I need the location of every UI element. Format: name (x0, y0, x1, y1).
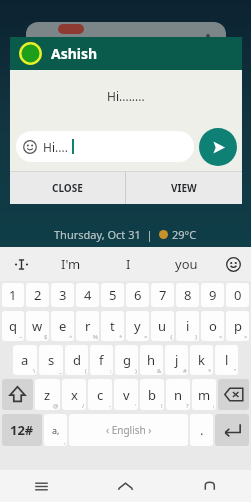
staticText: Thursday, Oct 31 | (54, 227, 153, 242)
staticText: x (71, 386, 78, 404)
button[interactable]: Back (167, 470, 251, 502)
staticText: = (144, 333, 148, 341)
button[interactable]: y (126, 311, 149, 341)
staticText: 3 (59, 286, 67, 304)
button[interactable]: 4 (76, 283, 99, 307)
button[interactable]: 7 (151, 283, 174, 307)
staticText: s (48, 351, 55, 369)
staticText: $ (44, 333, 48, 341)
button[interactable]: i (176, 311, 199, 341)
button[interactable]: d (65, 345, 88, 375)
staticText: l (225, 351, 229, 369)
button[interactable]: 9 (201, 283, 224, 307)
button[interactable]: 5 (101, 283, 124, 307)
button[interactable]: t (101, 311, 124, 341)
staticText: h (147, 351, 156, 369)
staticText: - (109, 402, 111, 410)
staticText: : (110, 367, 112, 375)
button[interactable]: p (226, 311, 249, 341)
button[interactable]: 0 (226, 283, 249, 307)
button[interactable]: Emoji (215, 247, 251, 281)
button[interactable]: w (26, 311, 49, 341)
staticText: ‹ English › (106, 423, 152, 437)
staticText: Hi.... (43, 139, 68, 155)
button[interactable]: Backspace (218, 379, 249, 410)
button[interactable]: s (39, 345, 63, 375)
button[interactable]: Home (83, 470, 167, 502)
staticText: c (97, 386, 104, 404)
button[interactable]: 3 (51, 283, 74, 307)
staticText: \ (33, 367, 36, 375)
button[interactable]: r (76, 311, 99, 341)
staticText: o (209, 317, 217, 335)
button[interactable]: a, (44, 414, 67, 446)
button[interactable]: VIEW (126, 172, 242, 204)
button[interactable]: 2 (26, 283, 49, 307)
button[interactable]: o (201, 311, 224, 341)
button[interactable]: Ashish (10, 37, 242, 70)
staticText: you (175, 255, 198, 273)
staticText: , (64, 438, 66, 446)
button[interactable]: j (165, 345, 188, 375)
button[interactable]: b (140, 379, 164, 410)
button[interactable]: 6 (126, 283, 149, 307)
staticText: q (9, 317, 17, 335)
staticText: VIEW (171, 181, 197, 195)
button[interactable]: Recents (0, 470, 83, 502)
button[interactable]: h (140, 345, 163, 375)
button[interactable]: Hi.... (16, 131, 194, 162)
staticText: e (59, 317, 67, 335)
staticText: a, (52, 424, 60, 436)
staticText: y (134, 317, 141, 335)
staticText: 1 (9, 286, 17, 304)
staticText: ! (161, 402, 163, 410)
button[interactable]: m (192, 379, 216, 410)
button[interactable]: Shift (2, 379, 33, 410)
staticText: m (198, 386, 211, 404)
staticText: ) (135, 367, 137, 375)
button[interactable]: 12# (2, 414, 42, 446)
button[interactable]: x (62, 379, 86, 410)
staticText: 0 (234, 286, 242, 304)
button[interactable]: . (190, 414, 213, 446)
button[interactable]: CLOSE (10, 172, 125, 204)
button[interactable]: you (157, 247, 215, 281)
staticText: * (119, 333, 123, 341)
staticText: & (157, 367, 162, 375)
button[interactable]: I'm (42, 247, 99, 281)
button[interactable]: c (88, 379, 112, 410)
staticText: 2 (34, 286, 42, 304)
staticText: 5 (109, 286, 117, 304)
staticText: Hi........ (107, 88, 145, 104)
staticText: 12# (10, 421, 34, 439)
button[interactable]: Enter (215, 414, 249, 446)
staticText: a (21, 351, 29, 369)
staticText: r (85, 317, 91, 335)
staticText: z (44, 386, 51, 404)
staticText: ~ (19, 333, 23, 341)
button[interactable]: ‹ English › (69, 414, 188, 446)
staticText: w (32, 317, 43, 335)
staticText: k (198, 351, 205, 369)
button[interactable]: e (51, 311, 74, 341)
button[interactable]: z (35, 379, 60, 410)
button[interactable]: f (90, 345, 113, 375)
button[interactable]: n (166, 379, 190, 410)
button[interactable]: v (114, 379, 138, 410)
staticText: CLOSE (52, 181, 83, 195)
staticText: b (148, 386, 156, 404)
button[interactable]: 8 (176, 283, 199, 307)
staticText: 9 (209, 286, 217, 304)
button[interactable]: 1 (2, 283, 24, 307)
button[interactable]: g (115, 345, 138, 375)
button[interactable]: a (13, 345, 37, 375)
button[interactable]: Text edit (0, 247, 42, 281)
button[interactable]: Send (199, 128, 237, 166)
button[interactable]: u (151, 311, 174, 341)
button[interactable]: q (2, 311, 24, 341)
staticText: Ashish (51, 44, 98, 63)
button[interactable]: l (215, 345, 238, 375)
staticText: 29°C (172, 227, 197, 242)
button[interactable]: k (190, 345, 213, 375)
button[interactable]: I (99, 247, 157, 281)
